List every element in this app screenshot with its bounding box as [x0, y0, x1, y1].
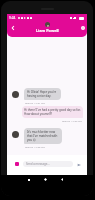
button[interactable]: Send a message... — [23, 161, 73, 167]
staticText: May 24 11:26 AM — [25, 145, 45, 148]
button[interactable]: Home — [42, 176, 49, 183]
button[interactable]: Back — [58, 176, 65, 183]
staticText: Send a message... — [26, 162, 50, 166]
staticText: 9:24 — [9, 16, 16, 20]
button[interactable]: Profile options — [78, 23, 87, 32]
staticText: It's much better now that I've matched w… — [27, 130, 58, 142]
staticText: May 24 11:21 AM — [25, 101, 45, 104]
button[interactable]: Back — [8, 23, 17, 32]
button[interactable]: Add media — [15, 162, 19, 166]
staticText: Hi there! I've had a pretty good day so … — [24, 108, 81, 116]
button[interactable]: Recents — [25, 176, 32, 183]
staticText: Liam Powell — [36, 28, 59, 33]
button[interactable]: Send — [76, 162, 81, 167]
staticText: May 24 11:24 AM — [62, 119, 82, 122]
staticText: Hi Olivia! Hope you're having a nice day… — [27, 90, 57, 98]
